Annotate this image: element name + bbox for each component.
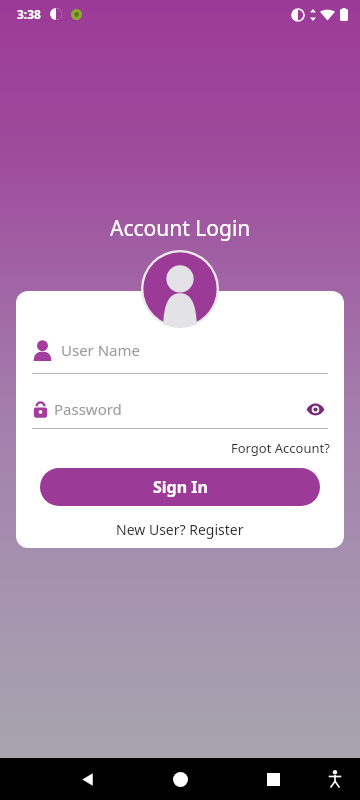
button[interactable]: Show password [302,396,328,422]
staticText: Account Login [110,214,251,243]
staticText: 3:38 [17,6,41,22]
staticText: New User? Register [116,520,244,539]
staticText: User Name [61,340,141,360]
staticText: Sign In [153,476,208,498]
button[interactable]: New User? Register [113,517,247,542]
button[interactable]: Home [173,772,188,787]
button[interactable]: Password [32,396,328,422]
button[interactable]: Back [80,772,95,787]
button[interactable]: Forgot Account? [229,437,332,459]
button[interactable]: Sign In [40,468,320,506]
button[interactable]: User Name [32,335,328,365]
staticText: Password [54,399,122,419]
button[interactable]: Accessibility [328,770,342,788]
staticText: Forgot Account? [231,439,330,457]
